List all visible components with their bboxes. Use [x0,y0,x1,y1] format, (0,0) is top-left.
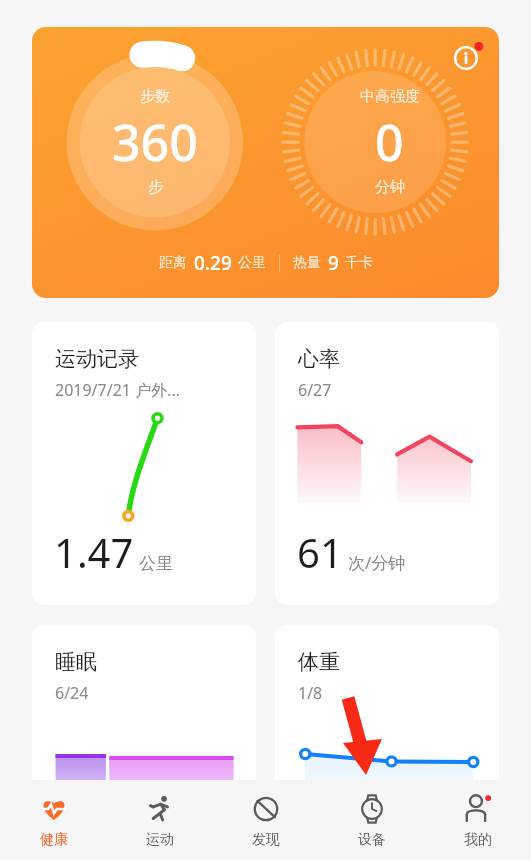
button[interactable]: 运动 [107,780,213,860]
staticText: 2019/7/21 户外... [55,379,180,401]
staticText: 61 [297,525,343,579]
staticText: 0.29 [194,250,232,276]
staticText: 分钟 [375,178,405,197]
staticText: 千卡 [345,254,373,272]
staticText: Baidu 经验 [355,800,488,836]
staticText: 公里 [139,553,173,574]
staticText: 0 [375,108,404,176]
staticText: 发现 [252,831,280,849]
staticText: 公里 [238,254,266,272]
staticText: 健康 [40,831,68,849]
staticText: 睡眠 [55,649,97,675]
staticText: 步数 [140,87,170,106]
staticText: 体重 [298,649,340,675]
staticText: 设备 [358,831,386,849]
button[interactable]: 心率 [275,322,499,605]
button[interactable]: 体重 [275,625,499,825]
staticText: 1.47 [54,525,134,579]
button[interactable]: 步数 [32,27,499,298]
button[interactable]: 睡眠 [32,625,256,825]
staticText: 运动 [146,831,174,849]
button[interactable]: 健康 [0,780,107,860]
staticText: 9 [328,250,339,276]
staticText: 步 [148,178,163,197]
staticText: 距离 [159,254,187,272]
staticText: 360 [112,108,198,176]
button[interactable]: 发现 [213,780,319,860]
staticText: 热量 [293,254,321,272]
staticText: 次/分钟 [348,551,406,574]
staticText: 1/8 [298,682,323,704]
staticText: 6/27 [298,379,332,401]
button[interactable]: 我的 [425,780,531,860]
button[interactable]: Info [451,39,485,73]
button[interactable]: 运动记录 [32,322,256,605]
staticText: 心率 [298,346,340,372]
button[interactable]: 设备 [319,780,425,860]
staticText: 中高强度 [360,87,420,106]
staticText: 运动记录 [55,346,139,372]
staticText: 我的 [464,831,492,849]
staticText: 6/24 [55,682,89,704]
